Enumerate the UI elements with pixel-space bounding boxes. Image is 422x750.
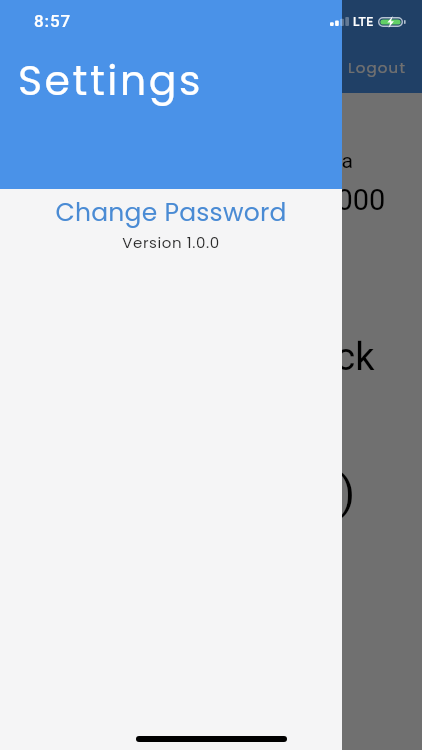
staticText: Send Check <box>175 335 375 380</box>
staticText: Change Password <box>0 195 342 230</box>
button[interactable]: Change Password <box>0 193 342 232</box>
staticText: Available Balance Data <box>140 149 353 174</box>
staticText: (0) <box>300 467 356 519</box>
button[interactable]: Logout <box>348 57 422 93</box>
staticText: Settings <box>18 52 203 109</box>
staticText: LTE <box>353 15 374 29</box>
other: Battery charging <box>378 17 406 27</box>
staticText: Version 1.0.0 <box>0 232 342 253</box>
staticText: 8:57 <box>34 11 72 31</box>
staticText: ₦ 25,000 <box>268 183 386 217</box>
other: Signal strength <box>330 16 349 26</box>
